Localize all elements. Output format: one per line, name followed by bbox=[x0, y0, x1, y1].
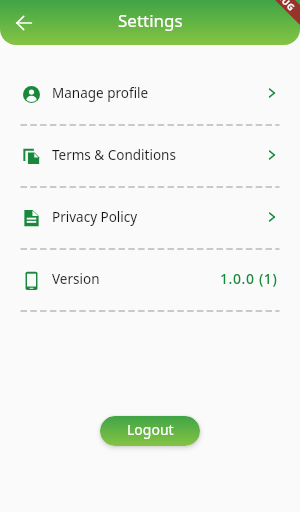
button[interactable]: Back bbox=[6, 5, 41, 40]
button[interactable]: Privacy Policy bbox=[0, 188, 300, 249]
staticText: Version bbox=[52, 270, 100, 288]
staticText: Privacy Policy bbox=[52, 208, 138, 226]
button[interactable]: Version bbox=[0, 250, 300, 311]
button[interactable]: Logout bbox=[100, 416, 200, 446]
staticText: Manage profile bbox=[52, 84, 149, 102]
staticText: 1.0.0 (1) bbox=[220, 269, 278, 288]
button[interactable]: Terms & Conditions bbox=[0, 126, 300, 187]
staticText: Terms & Conditions bbox=[52, 146, 176, 164]
staticText: Settings bbox=[118, 9, 183, 32]
button[interactable]: Manage profile bbox=[0, 64, 300, 125]
staticText: DEBUG bbox=[266, 0, 298, 13]
staticText: Logout bbox=[127, 420, 174, 439]
